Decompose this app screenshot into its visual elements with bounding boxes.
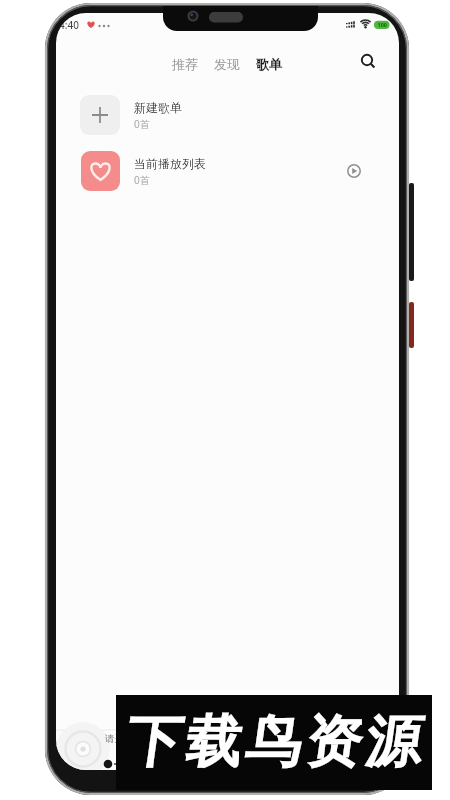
staticText: 发现 xyxy=(214,56,240,72)
staticText: 0首 xyxy=(134,173,150,187)
staticText: 推荐 xyxy=(172,56,198,72)
button[interactable]: 发现 xyxy=(201,53,253,75)
staticText: 0首 xyxy=(134,117,150,131)
button[interactable]: 歌单 xyxy=(243,53,295,75)
button[interactable]: 新建歌单 xyxy=(80,95,380,135)
button[interactable]: 推荐 xyxy=(159,53,211,75)
button[interactable] xyxy=(116,695,432,790)
staticText: 新建歌单 xyxy=(134,100,182,115)
staticText: 4:40 xyxy=(59,18,79,32)
button[interactable]: 当前播放列表 xyxy=(81,151,381,191)
button[interactable] xyxy=(342,159,366,183)
button[interactable] xyxy=(56,730,399,770)
button[interactable] xyxy=(356,49,380,73)
staticText: 歌单 xyxy=(256,56,282,72)
staticText: 当前播放列表 xyxy=(134,156,206,171)
